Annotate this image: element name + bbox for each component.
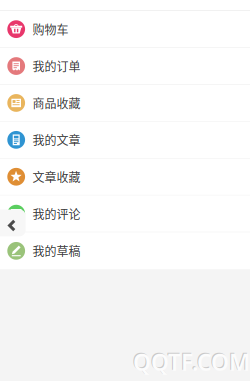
staticText: QQTF.COM xyxy=(132,346,249,376)
button[interactable]: 购物车 xyxy=(0,11,250,48)
button[interactable]: 商品收藏 xyxy=(0,85,250,122)
button[interactable]: 文章收藏 xyxy=(0,159,250,195)
staticText: 我的评论 xyxy=(33,205,81,222)
button[interactable]: 我的文章 xyxy=(0,122,250,159)
staticText: 购物车 xyxy=(33,20,69,38)
button[interactable]: 我的评论 xyxy=(0,195,250,232)
staticText: QQTF.COM xyxy=(133,347,250,377)
button[interactable]: 我的草稿 xyxy=(0,232,250,269)
staticText: 商品收藏 xyxy=(33,94,81,112)
staticText: 我的订单 xyxy=(33,57,81,75)
button[interactable]: Back xyxy=(0,209,26,236)
staticText: 我的草稿 xyxy=(33,242,81,260)
button[interactable]: 我的订单 xyxy=(0,48,250,85)
staticText: 我的文章 xyxy=(33,131,81,149)
staticText: 文章收藏 xyxy=(33,168,81,185)
